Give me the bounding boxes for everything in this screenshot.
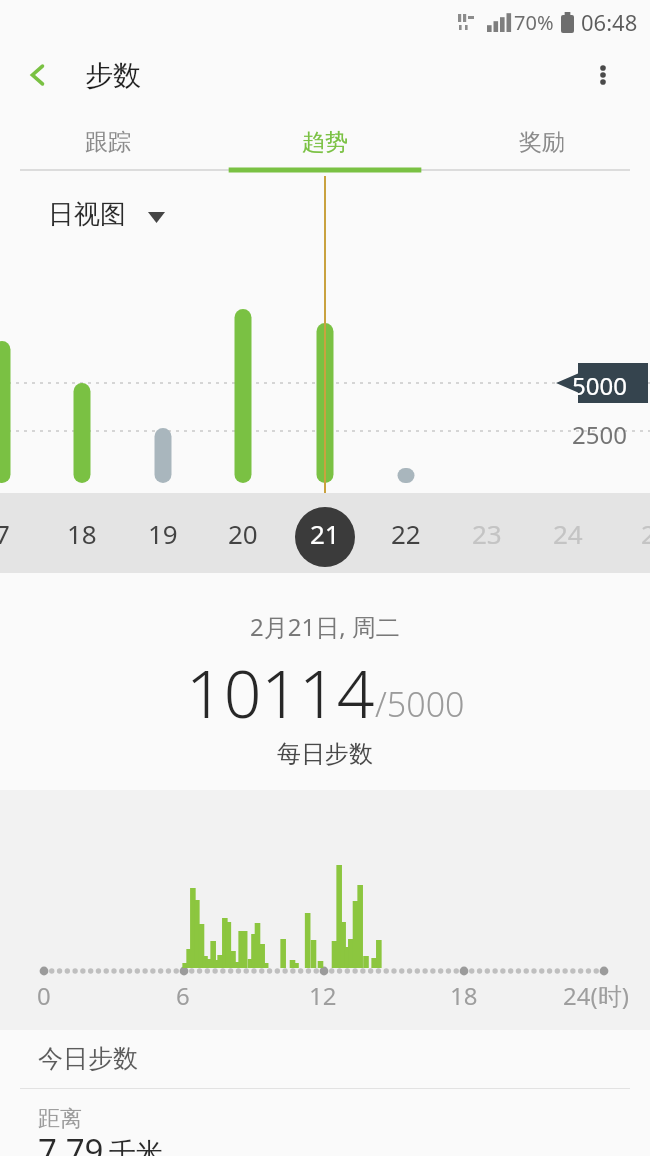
staticText: 0	[37, 979, 51, 1012]
staticText: 19	[148, 516, 178, 551]
staticText: 21	[310, 516, 340, 551]
button[interactable]: 18	[47, 493, 117, 573]
staticText: 2月21日, 周二	[250, 610, 400, 643]
button[interactable]: 23	[452, 493, 522, 573]
button[interactable]: Back	[0, 44, 76, 106]
staticText: 趋势	[302, 128, 348, 157]
staticText: 今日步数	[38, 1043, 138, 1074]
button[interactable]: 20	[208, 493, 278, 573]
staticText: 70%	[514, 9, 554, 36]
staticText: /5000	[375, 681, 465, 727]
staticText: 日视图	[48, 198, 126, 231]
staticText: 23	[472, 516, 502, 551]
button[interactable]: More options	[570, 44, 636, 106]
staticText: 6	[176, 979, 190, 1012]
staticText: 12	[309, 979, 337, 1012]
staticText: 20	[228, 516, 258, 551]
staticText: 7	[0, 516, 10, 551]
staticText: 24(时)	[563, 979, 629, 1012]
button[interactable]: 7	[0, 493, 37, 573]
staticText: 22	[391, 516, 421, 551]
button[interactable]: 19	[128, 493, 198, 573]
staticText: 每日步数	[277, 739, 373, 769]
button[interactable]: Change view range	[142, 206, 170, 228]
staticText: 距离	[38, 1105, 82, 1133]
staticText: 18	[450, 979, 478, 1012]
staticText: 千米	[109, 1136, 163, 1156]
staticText: 5000	[572, 369, 627, 402]
staticText: 24	[553, 516, 583, 551]
staticText: 06:48	[581, 7, 638, 37]
staticText: 18	[67, 516, 97, 551]
button[interactable]: 22	[371, 493, 441, 573]
button[interactable]: 24	[533, 493, 603, 573]
button[interactable]: 2	[613, 493, 650, 573]
staticText: 2500	[572, 418, 627, 451]
staticText: 7.79	[38, 1128, 104, 1156]
staticText: 奖励	[519, 128, 565, 157]
button[interactable]: 跟踪	[0, 112, 216, 172]
button[interactable]: 21	[290, 493, 360, 573]
button[interactable]: 趋势	[216, 112, 433, 172]
staticText: 跟踪	[85, 128, 131, 157]
staticText: 2	[641, 516, 650, 551]
button[interactable]: 奖励	[433, 112, 650, 172]
staticText: 10114	[186, 647, 375, 737]
staticText: 步数	[85, 58, 141, 93]
